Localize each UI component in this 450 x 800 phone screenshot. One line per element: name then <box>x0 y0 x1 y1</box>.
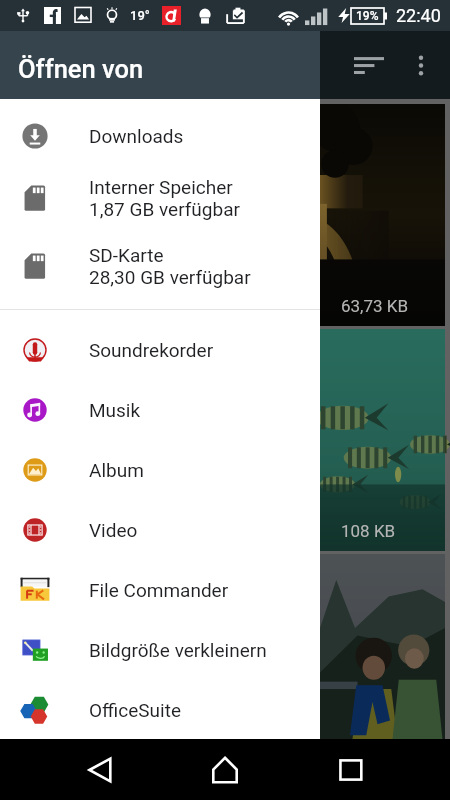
button[interactable]: SD-Karte <box>0 232 320 300</box>
staticText: 19° <box>130 8 150 23</box>
button[interactable]: File Commander <box>0 560 320 620</box>
staticText: 19% <box>356 9 379 23</box>
button[interactable]: Recent apps <box>325 744 377 796</box>
button[interactable]: Home <box>199 744 251 796</box>
staticText: Soundrekorder <box>89 339 214 361</box>
button[interactable]: Musik <box>0 380 320 440</box>
button[interactable]: Interner Speicher <box>0 164 320 232</box>
staticText: 63,73 KB <box>341 296 409 316</box>
staticText: Öffnen von <box>18 54 144 84</box>
staticText: 28,30 GB verfügbar <box>89 266 251 288</box>
button[interactable]: OfficeSuite <box>0 680 320 739</box>
staticText: 108 KB <box>341 521 396 541</box>
button[interactable]: Video <box>0 500 320 560</box>
staticText: Video <box>89 519 138 541</box>
button[interactable]: Downloads <box>0 107 320 164</box>
staticText: 22:40 <box>396 5 441 26</box>
button[interactable]: Bildgröße verkleinern <box>0 620 320 680</box>
button[interactable] <box>320 554 445 739</box>
staticText: Album <box>89 459 144 481</box>
staticText: Bildgröße verkleinern <box>89 639 267 661</box>
button[interactable]: Back <box>74 744 126 796</box>
staticText: Interner Speicher <box>89 176 233 198</box>
button[interactable]: Soundrekorder <box>0 320 320 380</box>
staticText: OfficeSuite <box>89 699 181 721</box>
staticText: SD-Karte <box>89 244 164 266</box>
staticText: Musik <box>89 399 141 421</box>
button[interactable]: Album <box>0 440 320 500</box>
button[interactable]: 108 KB <box>320 329 445 551</box>
staticText: Downloads <box>89 125 184 147</box>
button[interactable]: Sort <box>343 39 395 91</box>
button[interactable]: More options <box>395 39 447 91</box>
staticText: File Commander <box>89 579 229 601</box>
staticText: 1,87 GB verfügbar <box>89 198 240 220</box>
button[interactable]: 63,73 KB <box>320 104 445 326</box>
